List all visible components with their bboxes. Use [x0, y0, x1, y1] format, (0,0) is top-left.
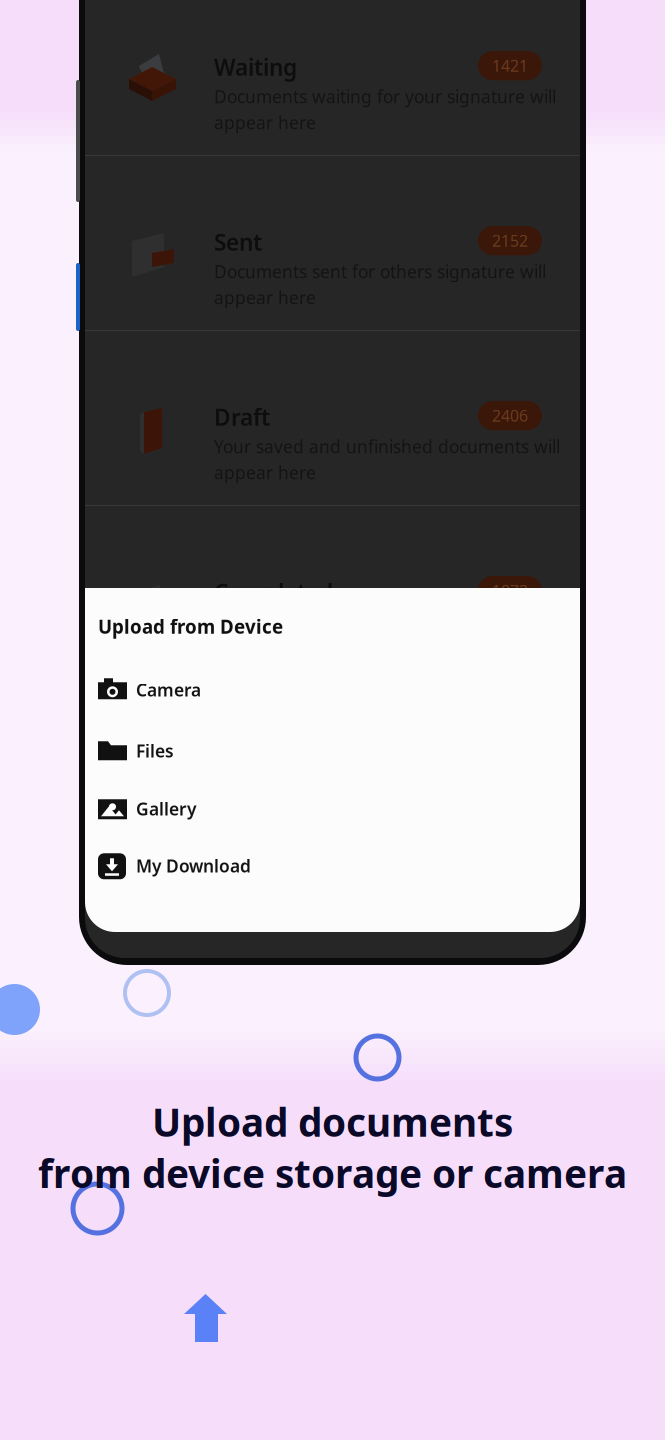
- staticText: Documents sent for others signature will: [214, 260, 546, 283]
- staticText: My Download: [136, 854, 251, 877]
- staticText: Your saved and unfinished documents will: [214, 435, 560, 458]
- staticText: appear here: [214, 111, 316, 134]
- staticText: Upload documents: [152, 1096, 513, 1147]
- staticText: from device storage or camera: [38, 1147, 627, 1199]
- button[interactable]: Gallery: [85, 794, 580, 824]
- button[interactable]: Draft: [85, 331, 580, 506]
- staticText: Completed: [214, 577, 333, 607]
- staticText: Gallery: [136, 797, 196, 820]
- staticText: appear here: [214, 461, 316, 484]
- staticText: Documents waiting for your signature wil…: [214, 85, 556, 108]
- button[interactable]: Waiting: [85, 0, 580, 156]
- staticText: 2152: [492, 230, 528, 251]
- staticText: Upload from Device: [98, 614, 283, 639]
- staticText: Files: [136, 739, 174, 762]
- staticText: 2406: [492, 405, 528, 426]
- button[interactable]: Camera: [85, 675, 580, 705]
- staticText: 1421: [492, 55, 528, 76]
- staticText: Camera: [136, 678, 201, 701]
- button[interactable]: Files: [85, 736, 580, 766]
- button[interactable]: My Download: [85, 851, 580, 881]
- staticText: 1072: [492, 580, 528, 601]
- staticText: Sent: [214, 227, 262, 257]
- button[interactable]: Sent: [85, 156, 580, 331]
- button[interactable]: Completed: [85, 506, 580, 681]
- staticText: appear here: [214, 286, 316, 309]
- staticText: Documents that are completed will: [214, 610, 499, 633]
- staticText: Draft: [214, 402, 270, 432]
- staticText: Waiting: [214, 52, 297, 82]
